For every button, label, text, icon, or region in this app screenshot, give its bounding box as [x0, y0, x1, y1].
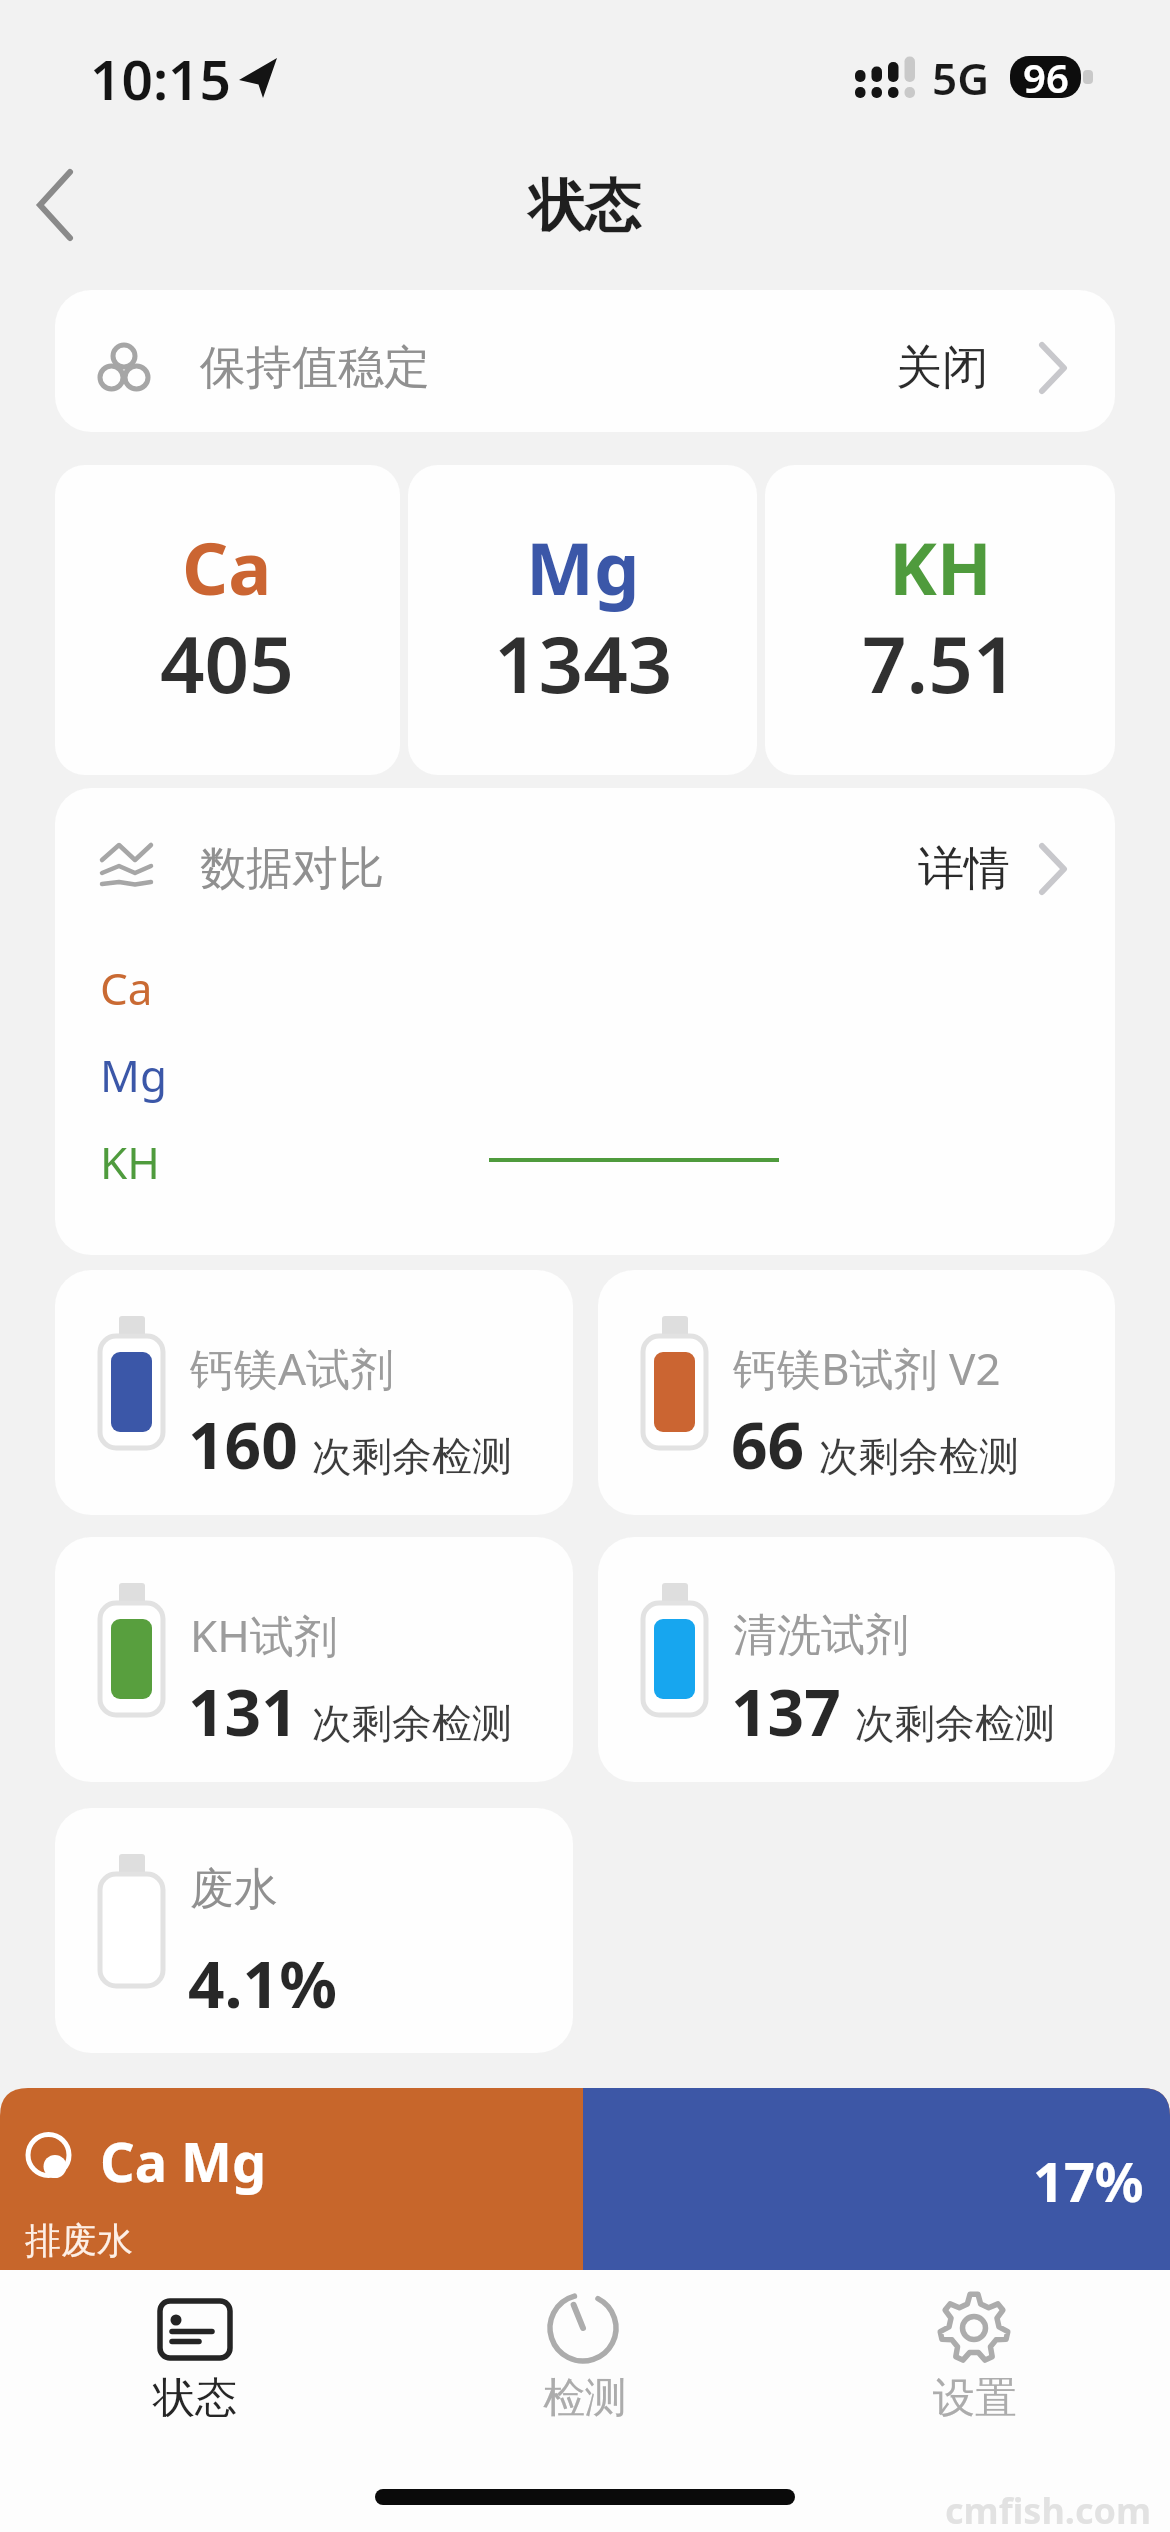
staticText: 17%	[1033, 2144, 1144, 2218]
staticText: 137	[731, 1668, 841, 1755]
staticText: 66	[731, 1401, 805, 1488]
staticText: KH	[100, 1132, 160, 1192]
staticText: 关闭	[896, 339, 988, 397]
staticText: 详情	[918, 840, 1010, 898]
staticText: 设置	[933, 2372, 1017, 2425]
staticText: cmfish.com	[945, 2486, 1152, 2532]
button[interactable]	[20, 160, 110, 250]
staticText: 检测	[543, 2372, 627, 2425]
staticText: 保持值稳定	[200, 339, 430, 397]
staticText: 7.51	[862, 610, 1018, 716]
staticText: 次剩余检测	[855, 1698, 1055, 1748]
button[interactable]	[880, 830, 1080, 910]
staticText: 1343	[494, 610, 673, 716]
button[interactable]	[0, 2088, 1170, 2270]
staticText: 5G	[932, 48, 990, 108]
staticText: 131	[188, 1668, 298, 1755]
staticText: Ca	[182, 518, 272, 616]
staticText: Mg	[100, 1045, 167, 1105]
button[interactable]	[490, 2280, 680, 2430]
staticText: 160	[188, 1401, 298, 1488]
staticText: 状态	[529, 171, 641, 242]
staticText: 钙镁A试剂	[190, 1338, 395, 1398]
staticText: 次剩余检测	[819, 1431, 1019, 1481]
staticText: 次剩余检测	[312, 1431, 512, 1481]
staticText: 清洗试剂	[733, 1608, 909, 1663]
staticText: KH试剂	[190, 1605, 338, 1665]
staticText: KH	[889, 518, 992, 616]
staticText: 废水	[190, 1862, 278, 1917]
button[interactable]	[55, 290, 1115, 432]
staticText: Ca	[100, 958, 153, 1018]
staticText: 405	[160, 610, 294, 716]
staticText: 排废水	[25, 2218, 133, 2263]
staticText: 4.1%	[188, 1940, 337, 2027]
staticText: Ca Mg	[100, 2124, 267, 2198]
staticText: 数据对比	[200, 840, 384, 898]
button[interactable]	[880, 2280, 1070, 2430]
button[interactable]	[100, 2280, 290, 2430]
staticText: 钙镁B试剂 V2	[733, 1338, 1001, 1398]
staticText: Mg	[526, 518, 640, 616]
staticText: 状态	[153, 2372, 237, 2425]
staticText: 次剩余检测	[312, 1698, 512, 1748]
staticText: 96	[1023, 50, 1069, 104]
staticText: 10:15	[90, 41, 232, 116]
